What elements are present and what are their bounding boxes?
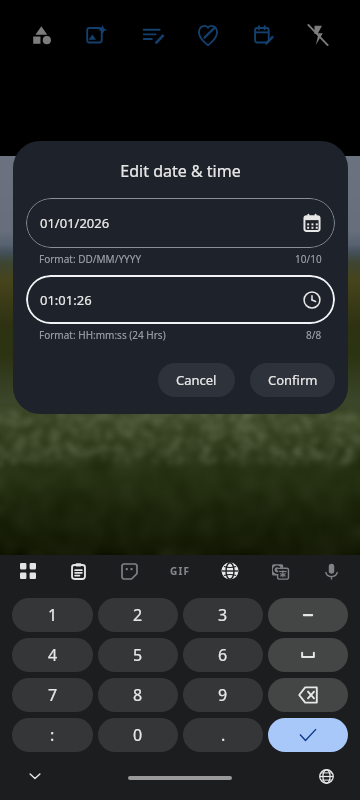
button[interactable]: Hide keyboard: [23, 764, 47, 788]
button[interactable]: Cancel: [158, 363, 235, 397]
button[interactable]: minus: [268, 598, 348, 632]
button[interactable]: Edit text: [135, 17, 171, 53]
button[interactable]: Translate: [265, 556, 295, 586]
staticText: Edit date & time: [13, 160, 348, 182]
staticText: 4: [48, 644, 58, 666]
staticText: Cancel: [176, 371, 217, 389]
staticText: 2: [133, 604, 143, 626]
button[interactable]: 8: [98, 678, 178, 712]
staticText: Format: DD/MM/YYYY: [39, 252, 295, 266]
staticText: 8: [133, 684, 143, 706]
button[interactable]: Flash off: [300, 17, 336, 53]
button[interactable]: Shapes: [24, 17, 60, 53]
button[interactable]: 0: [98, 718, 178, 752]
button[interactable]: 01:01:26: [26, 275, 335, 324]
button[interactable]: 5: [98, 638, 178, 672]
button[interactable]: enter: [268, 718, 348, 752]
button[interactable]: 4: [12, 638, 93, 672]
staticText: :: [50, 724, 55, 746]
button[interactable]: Calendar note: [245, 17, 281, 53]
button[interactable]: Clipboard: [63, 556, 93, 586]
staticText: Format: HH:mm:ss (24 Hrs): [39, 328, 306, 342]
button[interactable]: Magic edit: [78, 17, 114, 53]
staticText: 01/01/2026: [40, 214, 303, 232]
button[interactable]: Confirm: [250, 363, 335, 397]
button[interactable]: 2: [98, 598, 178, 632]
staticText: 7: [48, 684, 58, 706]
staticText: 1: [48, 604, 58, 626]
staticText: Confirm: [268, 371, 318, 389]
button[interactable]: 1: [12, 598, 93, 632]
button[interactable]: 7: [12, 678, 93, 712]
button[interactable]: Change keyboard: [314, 764, 338, 788]
staticText: 10/10: [295, 252, 322, 266]
button[interactable]: GIF: [165, 556, 195, 586]
staticText: 8/8: [306, 328, 322, 342]
staticText: 3: [218, 604, 228, 626]
button[interactable]: Apps: [13, 556, 43, 586]
button[interactable]: Voice input: [316, 556, 346, 586]
button[interactable]: 9: [183, 678, 263, 712]
staticText: 5: [133, 644, 143, 666]
button[interactable]: .: [183, 718, 263, 752]
staticText: 6: [218, 644, 228, 666]
button[interactable]: 3: [183, 598, 263, 632]
button[interactable]: Stickers: [114, 556, 144, 586]
staticText: 9: [218, 684, 228, 706]
button[interactable]: Protect: [190, 17, 226, 53]
button[interactable]: Language: [215, 556, 245, 586]
button[interactable]: 01/01/2026: [26, 198, 335, 248]
button[interactable]: 6: [183, 638, 263, 672]
button[interactable]: back: [268, 678, 348, 712]
staticText: 0: [133, 724, 143, 746]
button[interactable]: :: [12, 718, 93, 752]
staticText: GIF: [170, 564, 191, 578]
staticText: 01:01:26: [40, 291, 303, 309]
staticText: .: [221, 724, 226, 746]
button[interactable]: space: [268, 638, 348, 672]
